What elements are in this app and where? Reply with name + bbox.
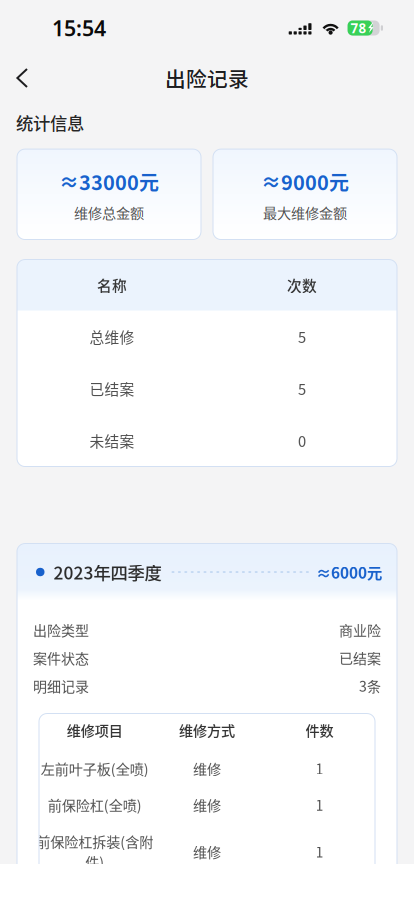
staticText: 2023年四季度 xyxy=(53,559,161,585)
staticText: 出险记录 xyxy=(165,63,249,93)
staticText: 1 xyxy=(315,794,323,815)
staticText: 未结案 xyxy=(89,430,134,451)
staticText: 78 xyxy=(351,19,367,37)
staticText: 1 xyxy=(315,758,323,778)
staticText: 0 xyxy=(298,430,306,451)
staticText: 次数 xyxy=(287,274,317,296)
staticText: 已结案 xyxy=(89,378,134,399)
staticText: 维修总金额 xyxy=(74,202,144,223)
staticText: 最大维修金额 xyxy=(263,202,347,223)
staticText: 明细记录 xyxy=(33,675,89,696)
staticText: 前保险杠(全喷) xyxy=(47,794,141,815)
staticText: ≈9000元 xyxy=(261,167,349,196)
staticText: 5 xyxy=(298,378,306,399)
staticText: ≈33000元 xyxy=(59,167,159,196)
staticText: 已结案 xyxy=(339,647,381,668)
staticText: 名称 xyxy=(97,274,127,296)
staticText: 维修 xyxy=(193,841,221,862)
staticText: 案件状态 xyxy=(33,647,89,668)
staticText: ≈6000元 xyxy=(316,561,382,583)
button[interactable]: 返回 xyxy=(5,55,39,101)
staticText: 维修 xyxy=(193,758,221,778)
staticText: 维修方式 xyxy=(179,719,235,740)
staticText: 出险类型 xyxy=(33,619,89,640)
staticText: 件数 xyxy=(305,719,333,740)
staticText: 1 xyxy=(315,841,323,862)
staticText: 前保险杠拆装(含附件) xyxy=(36,831,153,872)
staticText: 统计信息 xyxy=(16,110,84,135)
staticText: 商业险 xyxy=(339,619,381,640)
staticText: 总维修 xyxy=(89,326,134,347)
staticText: 左前叶子板(全喷) xyxy=(40,758,148,778)
staticText: 15:54 xyxy=(52,13,106,43)
staticText: 5 xyxy=(298,326,306,347)
staticText: 3条 xyxy=(359,675,381,696)
staticText: 维修 xyxy=(193,794,221,815)
staticText: 维修项目 xyxy=(66,719,122,740)
